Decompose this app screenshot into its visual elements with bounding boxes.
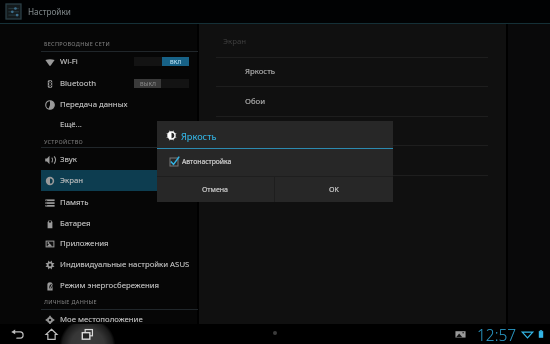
- button[interactable]: Home: [40, 324, 63, 344]
- staticText: Bluetooth: [60, 78, 97, 89]
- staticText: Отмена: [202, 185, 229, 195]
- staticText: Яркость: [181, 130, 217, 143]
- button[interactable]: Заставка: [200, 153, 507, 168]
- button[interactable]: Приложения: [0, 233, 198, 254]
- staticText: OK: [329, 185, 339, 195]
- button[interactable]: Спящий режим: [200, 123, 507, 138]
- button[interactable]: OK: [275, 177, 393, 202]
- staticText: Индивидуальные настройки ASUS: [60, 259, 190, 270]
- button[interactable]: Bluetooth: [0, 73, 198, 94]
- button[interactable]: Recents: [75, 324, 99, 344]
- staticText: Приложения: [60, 238, 109, 249]
- staticText: 12:57: [477, 324, 517, 344]
- button[interactable]: Индивидуальные настройки ASUS: [0, 254, 198, 275]
- staticText: ВКЛ: [170, 58, 182, 66]
- staticText: Память: [60, 197, 89, 208]
- button[interactable]: Мое местоположение: [0, 309, 198, 330]
- staticText: Режим энергосбережения: [60, 280, 160, 291]
- button[interactable]: Батарея: [0, 213, 198, 234]
- staticText: Wi-Fi: [60, 56, 78, 67]
- button[interactable]: Wi-Fi: [0, 51, 198, 72]
- staticText: УСТРОЙСТВО: [44, 138, 84, 145]
- button[interactable]: Back: [6, 324, 29, 344]
- staticText: Настройки: [28, 6, 71, 17]
- button[interactable]: Яркость: [200, 64, 507, 79]
- staticText: Экран: [60, 175, 84, 186]
- staticText: Передача данных: [60, 99, 128, 110]
- button[interactable]: Ещё...: [0, 114, 198, 135]
- staticText: ВЫКЛ: [140, 80, 156, 88]
- button[interactable]: Передача данных: [0, 94, 198, 115]
- button[interactable]: Звук: [0, 149, 198, 170]
- button[interactable]: Экран: [0, 170, 198, 191]
- staticText: БЕСПРОВОДНЫЕ СЕТИ: [44, 40, 110, 47]
- staticText: Батарея: [60, 218, 91, 229]
- staticText: Яркость: [245, 66, 276, 77]
- button[interactable]: Обои: [200, 94, 507, 109]
- staticText: ЛИЧНЫЕ ДАННЫЕ: [44, 298, 97, 305]
- staticText: Ещё...: [60, 119, 82, 130]
- staticText: Обои: [245, 96, 266, 107]
- button[interactable]: Режим энергосбережения: [0, 275, 198, 296]
- staticText: Звук: [60, 154, 77, 165]
- staticText: Мое местоположение: [60, 314, 143, 325]
- button[interactable]: Память: [0, 192, 198, 213]
- staticText: Автонастройка: [182, 157, 232, 166]
- staticText: Экран: [223, 36, 247, 47]
- button[interactable]: Отмена: [157, 177, 274, 202]
